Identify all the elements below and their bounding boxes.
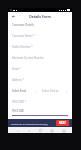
staticText: Alternate Contact Number (12, 56, 45, 60)
button[interactable]: Email * (12, 67, 68, 73)
button[interactable]: Switch input method (61, 128, 66, 133)
staticText: Select District (42, 89, 65, 93)
staticText: Consumer Name * (12, 34, 35, 38)
button[interactable]: Back (11, 14, 16, 19)
button[interactable]: Back (26, 128, 31, 133)
staticText: Address * (12, 78, 24, 82)
staticText: PIN CODE (12, 109, 25, 113)
staticText: NEXT (59, 121, 66, 125)
button[interactable]: Recents (49, 128, 54, 133)
button[interactable]: Address * (12, 78, 68, 84)
staticText: Please fill all mandatory field(s) (11, 122, 48, 125)
staticText: Details Form (16, 14, 64, 19)
button[interactable]: Consumer Name * (12, 34, 68, 40)
staticText: PIN CODE * (12, 100, 27, 104)
button[interactable]: Select District (42, 89, 68, 95)
staticText: Email * (12, 67, 21, 71)
button[interactable]: Please fill all mandatory field(s) (11, 122, 54, 125)
staticText: Select State (12, 89, 35, 93)
button[interactable]: Alternate Contact Number (12, 56, 68, 62)
button[interactable]: Select State (12, 89, 38, 95)
button[interactable]: Home (38, 128, 43, 133)
staticText: Consumer Details (12, 23, 34, 27)
button[interactable]: Hide (15, 128, 20, 133)
button[interactable]: Father Number * (12, 45, 68, 51)
button[interactable]: PIN CODE * (12, 100, 68, 106)
button[interactable]: NEXT (56, 120, 69, 126)
staticText: Father Number * (12, 45, 33, 49)
